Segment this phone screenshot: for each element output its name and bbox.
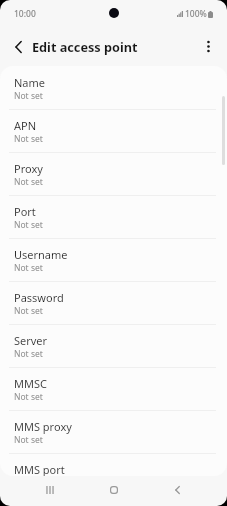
staticText: Name (14, 75, 46, 90)
button[interactable]: Proxy (0, 152, 227, 195)
staticText: MMS proxy (14, 419, 72, 434)
button[interactable]: Username (0, 238, 227, 281)
staticText: MMSC (14, 376, 47, 391)
button[interactable]: APN (0, 109, 227, 152)
staticText: Not set (14, 219, 43, 231)
button[interactable]: MMS proxy (0, 410, 227, 453)
staticText: Not set (14, 305, 43, 317)
button[interactable]: MMS port (0, 453, 227, 476)
staticText: Not set (14, 348, 43, 360)
staticText: Not set (14, 176, 43, 188)
staticText: Not set (14, 262, 43, 274)
button[interactable]: Password (0, 281, 227, 324)
button[interactable]: Recents (36, 473, 64, 506)
button[interactable]: More options (196, 34, 221, 59)
button[interactable]: Back (163, 473, 191, 506)
staticText: Not set (14, 434, 43, 446)
button[interactable]: Server (0, 324, 227, 367)
button[interactable]: Home (100, 473, 128, 506)
button[interactable]: MMSC (0, 367, 227, 410)
staticText: Password (14, 290, 64, 305)
staticText: MMS port (14, 462, 65, 476)
staticText: 10:00 (14, 8, 36, 20)
button[interactable]: Name (0, 66, 227, 109)
staticText: Server (14, 333, 48, 348)
staticText: Edit access point (32, 38, 138, 55)
staticText: APN (14, 118, 37, 133)
staticText: Not set (14, 133, 43, 145)
staticText: 100% (185, 8, 207, 20)
staticText: Username (14, 247, 68, 262)
button[interactable]: Port (0, 195, 227, 238)
staticText: Not set (14, 90, 43, 102)
staticText: Proxy (14, 161, 43, 176)
staticText: Not set (14, 391, 43, 403)
button[interactable]: Navigate up (6, 34, 31, 59)
staticText: Port (14, 204, 36, 219)
